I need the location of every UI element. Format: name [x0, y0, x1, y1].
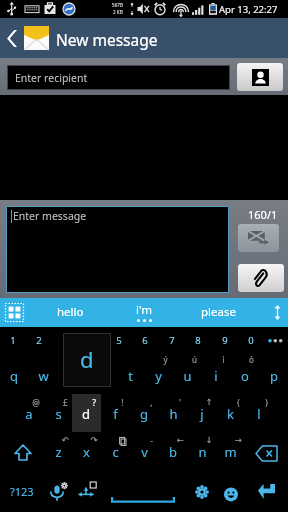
button[interactable]: Settings — [187, 471, 216, 512]
button[interactable]: Send message — [238, 224, 279, 252]
button[interactable]: Enter recipient — [7, 65, 230, 90]
staticText: 0 — [248, 334, 254, 347]
staticText: 1 — [10, 334, 16, 347]
staticText: 567B — [112, 2, 123, 8]
staticText: - — [150, 435, 153, 447]
staticText: m — [224, 443, 237, 461]
staticText: f — [113, 405, 118, 423]
staticText: ú — [192, 354, 197, 365]
staticText: v — [141, 443, 148, 461]
staticText: ← — [176, 435, 184, 445]
staticText: ↑ — [205, 397, 213, 407]
staticText: Enter recipient — [15, 71, 88, 85]
staticText: please — [201, 304, 236, 320]
staticText: ) — [265, 397, 268, 409]
staticText: i'm — [136, 302, 152, 318]
staticText: 8 — [195, 334, 201, 347]
button[interactable]: Pick recipient from contacts — [237, 63, 283, 91]
staticText: i — [214, 367, 218, 385]
staticText: u — [183, 367, 192, 385]
button[interactable]: hello — [32, 298, 108, 327]
staticText: y — [155, 367, 162, 385]
button[interactable]: Enter message — [6, 206, 229, 293]
staticText: s — [55, 405, 62, 423]
staticText: 7 — [169, 334, 175, 347]
staticText: ý — [163, 354, 168, 365]
staticText: hello — [57, 304, 84, 320]
staticText: ( — [237, 397, 240, 409]
staticText: g — [140, 405, 148, 423]
staticText: 2 KB — [113, 9, 123, 15]
staticText: ?123 — [10, 484, 34, 499]
button[interactable]: Voice input — [44, 471, 72, 512]
staticText: @ — [32, 397, 40, 409]
staticText: 5 — [116, 334, 122, 347]
staticText: Apr 13, 22:27 — [219, 3, 278, 16]
staticText: l — [257, 405, 261, 423]
staticText: d — [82, 405, 90, 423]
staticText: , — [150, 397, 153, 409]
staticText: j — [200, 405, 204, 423]
staticText: ì — [222, 354, 225, 365]
staticText: w — [38, 367, 49, 385]
staticText: ↶ — [61, 435, 69, 445]
staticText: p — [270, 367, 278, 385]
staticText: ↓ — [205, 435, 213, 445]
staticText: z — [55, 443, 62, 461]
button[interactable]: Shift — [0, 433, 46, 472]
button[interactable]: Space — [101, 471, 187, 512]
button[interactable]: More suggestions — [266, 298, 288, 327]
button[interactable]: Enter — [245, 471, 288, 512]
staticText: 160/1 — [248, 207, 278, 222]
staticText: ? — [92, 397, 96, 409]
staticText: a — [25, 405, 33, 423]
button[interactable]: Emoticons — [216, 471, 245, 512]
staticText: ò — [249, 354, 254, 365]
staticText: n — [198, 443, 207, 461]
staticText: 2 — [36, 334, 42, 347]
button[interactable]: please — [182, 298, 254, 327]
button[interactable]: Backspace — [244, 433, 288, 472]
staticText: 6 — [142, 334, 148, 347]
staticText: £ — [63, 397, 68, 409]
button[interactable]: Back — [0, 18, 49, 58]
staticText: x — [83, 443, 90, 461]
button[interactable]: Input method — [72, 471, 101, 512]
staticText: o — [241, 367, 249, 385]
staticText: q — [10, 367, 18, 385]
staticText: t — [128, 367, 133, 385]
button[interactable]: ?123 — [0, 471, 44, 512]
staticText: c — [112, 443, 119, 461]
staticText: d — [80, 344, 94, 374]
staticText: b — [169, 443, 177, 461]
staticText: ! — [121, 397, 124, 409]
staticText: Enter message — [13, 209, 87, 223]
staticText: New message — [56, 29, 158, 50]
button[interactable]: Expand suggestions — [5, 303, 24, 322]
button[interactable] — [72, 394, 101, 432]
staticText: k — [227, 405, 234, 423]
staticText: → — [234, 435, 242, 445]
staticText: h — [169, 405, 178, 423]
button[interactable]: Attach file — [238, 264, 284, 292]
staticText: ↷ — [90, 435, 98, 445]
staticText: ' — [179, 397, 181, 409]
staticText: 9 — [222, 334, 228, 347]
button[interactable]: i'm — [113, 298, 175, 327]
staticText: 3 — [63, 334, 69, 347]
